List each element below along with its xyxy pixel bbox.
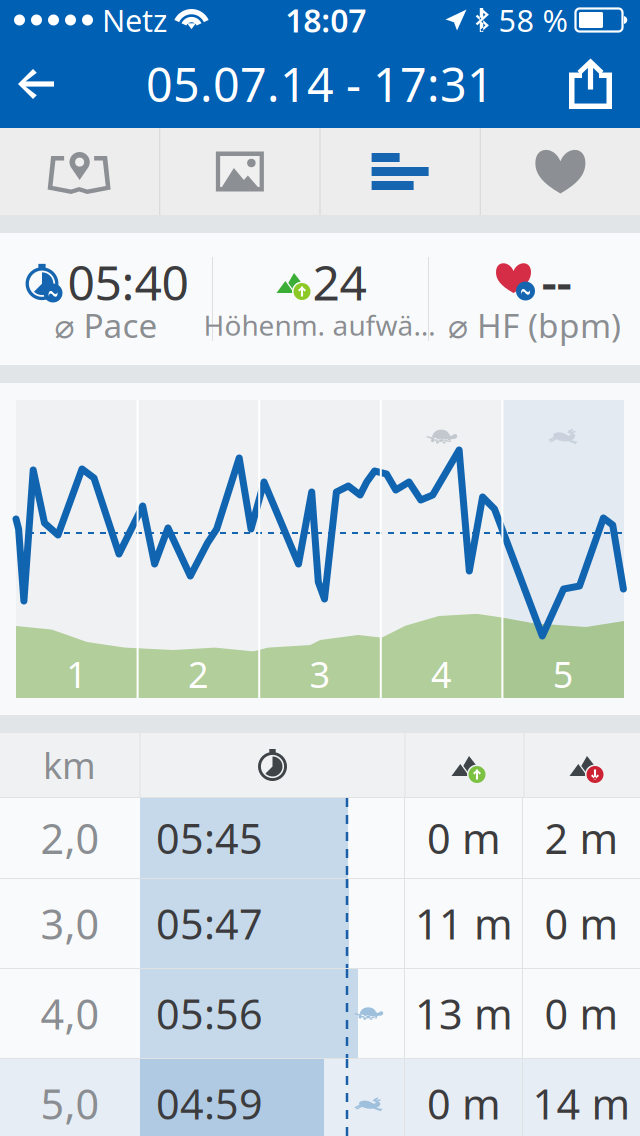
- staticText: 0 m: [544, 986, 618, 1041]
- staticText: 5: [553, 650, 574, 698]
- button[interactable]: 5,0: [0, 1059, 640, 1136]
- button[interactable]: Splits: [320, 128, 480, 215]
- staticText: 05:40: [67, 250, 188, 314]
- button[interactable]: 4,0: [0, 969, 640, 1058]
- staticText: 3,0: [40, 896, 99, 951]
- staticText: 58 %: [498, 0, 567, 40]
- staticText: 4,0: [40, 986, 99, 1041]
- staticText: Netz: [102, 0, 167, 40]
- staticText: 11 m: [415, 896, 513, 951]
- button[interactable]: Share: [543, 45, 640, 122]
- staticText: km: [43, 741, 96, 789]
- staticText: 24: [312, 250, 366, 314]
- staticText: 4: [431, 650, 452, 698]
- staticText: --: [541, 250, 571, 314]
- button[interactable]: 3,0: [0, 879, 640, 968]
- button[interactable]: Back: [0, 45, 82, 123]
- button[interactable]: Map: [0, 128, 159, 215]
- staticText: 05:56: [156, 986, 263, 1041]
- staticText: 2: [188, 650, 209, 698]
- staticText: Höhenm. aufwä…: [203, 306, 435, 344]
- staticText: 1: [66, 650, 87, 698]
- staticText: 3: [309, 650, 330, 698]
- staticText: 05.07.14 - 17:31: [146, 53, 494, 115]
- staticText: 04:59: [156, 1076, 263, 1131]
- staticText: ⌀ Pace: [54, 303, 157, 347]
- staticText: 13 m: [415, 986, 513, 1041]
- staticText: 0 m: [427, 1076, 501, 1131]
- staticText: 05:47: [156, 896, 263, 951]
- staticText: 18:07: [285, 0, 366, 41]
- staticText: 0 m: [544, 896, 618, 951]
- staticText: 0 m: [427, 811, 501, 865]
- button[interactable]: 2,0: [0, 798, 640, 878]
- staticText: 5,0: [40, 1076, 99, 1131]
- staticText: 2,0: [40, 811, 99, 865]
- button[interactable]: Photos: [160, 128, 319, 215]
- staticText: ⌀ HF (bpm): [448, 303, 621, 347]
- staticText: 05:45: [156, 811, 263, 865]
- button[interactable]: Heart rate: [481, 128, 640, 215]
- staticText: 2 m: [544, 811, 618, 865]
- staticText: 14 m: [532, 1076, 630, 1131]
